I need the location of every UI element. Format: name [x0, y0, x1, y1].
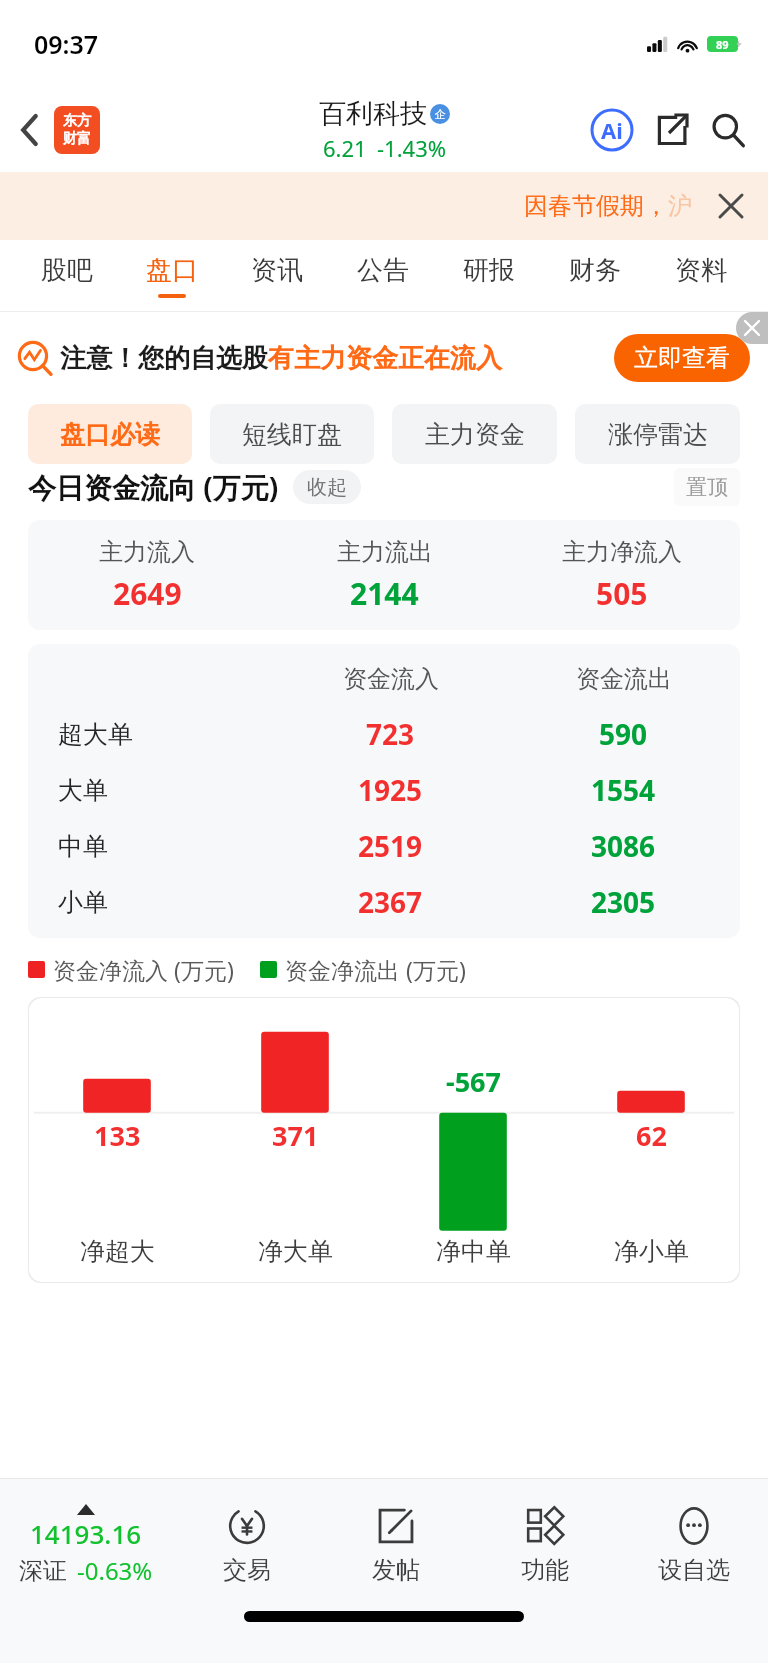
staticText: 资讯	[251, 254, 303, 287]
staticText: 置顶	[686, 474, 728, 500]
button[interactable]: Back	[8, 108, 52, 152]
button[interactable]: 主力资金	[392, 404, 557, 464]
button[interactable]: 短线盯盘	[210, 404, 374, 464]
staticText: 有主力资金正在流入	[268, 342, 502, 375]
button[interactable]: Close notice	[714, 189, 748, 223]
staticText: 主力流入	[99, 537, 195, 567]
button[interactable]: 盘口	[119, 240, 224, 312]
staticText: -1.43%	[377, 133, 447, 163]
staticText: 涨停雷达	[608, 419, 708, 450]
staticText: 功能	[521, 1555, 569, 1585]
staticText: 资金净流出 (万元)	[285, 954, 466, 985]
staticText: 净大单	[258, 1236, 333, 1267]
button[interactable]: 公告	[330, 240, 436, 312]
staticText: 1554	[591, 771, 656, 809]
staticText: 资金流入	[343, 664, 439, 694]
button[interactable]: 盘口必读	[28, 404, 192, 464]
button[interactable]: 主力流入	[28, 520, 740, 630]
button[interactable]: Close ad	[736, 312, 768, 344]
staticText: 62	[636, 1117, 667, 1154]
button[interactable]: 因春节假期，	[0, 172, 768, 240]
button[interactable]: 功能	[470, 1479, 619, 1611]
staticText: 505	[596, 573, 648, 614]
staticText: 设自选	[658, 1555, 730, 1585]
staticText: 百利科技	[319, 97, 427, 131]
staticText: 723	[366, 715, 415, 753]
staticText: 净中单	[436, 1236, 511, 1267]
button[interactable]: 资料	[648, 240, 754, 312]
staticText: 超大单	[58, 719, 133, 750]
staticText: 盘口必读	[60, 419, 160, 450]
staticText: 2305	[591, 883, 656, 921]
staticText: 盘口	[146, 254, 198, 287]
button[interactable]: AI assistant	[586, 104, 638, 156]
staticText: 企	[435, 107, 446, 121]
staticText: 因春节假期，	[524, 191, 668, 221]
staticText: 6.21	[323, 133, 367, 163]
button[interactable]: 资金流入	[28, 644, 740, 938]
staticText: 财富	[63, 130, 91, 148]
button[interactable]: East Money	[54, 106, 100, 154]
staticText: 沪	[668, 191, 692, 221]
staticText: 09:37	[34, 27, 99, 61]
staticText: 中单	[58, 831, 108, 862]
staticText: 590	[599, 715, 648, 753]
staticText: 1925	[358, 771, 423, 809]
staticText: 2519	[358, 827, 423, 865]
staticText: 今日资金流向 (万元)	[28, 468, 279, 506]
staticText: 深证	[19, 1556, 67, 1586]
staticText: 资金净流入 (万元)	[53, 954, 234, 985]
staticText: 89	[716, 37, 729, 52]
staticText: 主力流出	[337, 537, 433, 567]
staticText: 交易	[223, 1555, 271, 1585]
staticText: -0.63%	[77, 1554, 153, 1587]
button[interactable]: 立即查看	[614, 334, 750, 382]
button[interactable]: Search	[702, 104, 754, 156]
button[interactable]: 14193.16	[0, 1479, 172, 1611]
staticText: Ai	[601, 115, 623, 145]
button[interactable]: 财务	[542, 240, 648, 312]
button[interactable]: 研报	[436, 240, 542, 312]
staticText: 股吧	[41, 254, 93, 287]
staticText: 东方	[63, 112, 91, 130]
button[interactable]: 涨停雷达	[575, 404, 740, 464]
staticText: 资金流出	[576, 664, 672, 694]
staticText: 净超大	[80, 1236, 155, 1267]
staticText: 资料	[675, 254, 727, 287]
staticText: 发帖	[372, 1555, 420, 1585]
staticText: 14193.16	[30, 1516, 142, 1551]
staticText: 立即查看	[634, 343, 730, 373]
staticText: 小单	[58, 887, 108, 918]
button[interactable]: 收起	[293, 470, 361, 504]
button[interactable]: 交易	[172, 1479, 321, 1611]
button[interactable]: 设自选	[619, 1479, 768, 1611]
staticText: 公告	[357, 254, 409, 287]
staticText: 133	[94, 1117, 141, 1154]
staticText: 2367	[358, 883, 423, 921]
staticText: 收起	[307, 475, 347, 500]
staticText: 2144	[350, 573, 419, 614]
staticText: 371	[272, 1117, 319, 1154]
staticText: 主力净流入	[562, 537, 682, 567]
staticText: 2649	[113, 573, 182, 614]
button[interactable]: 股吧	[14, 240, 119, 312]
button[interactable]: 发帖	[321, 1479, 470, 1611]
staticText: 大单	[58, 775, 108, 806]
button[interactable]: 133	[28, 997, 740, 1283]
button[interactable]: 资讯	[224, 240, 330, 312]
staticText: 3086	[591, 827, 656, 865]
staticText: 净小单	[614, 1236, 689, 1267]
button[interactable]: 注意！您的自选股	[18, 334, 750, 382]
staticText: 研报	[463, 254, 515, 287]
button[interactable]: 置顶	[674, 468, 740, 506]
staticText: 财务	[569, 254, 621, 287]
button[interactable]: Share	[648, 106, 696, 154]
staticText: -567	[446, 1063, 501, 1100]
staticText: 注意！您的自选股	[60, 342, 268, 375]
staticText: 短线盯盘	[242, 419, 342, 450]
staticText: 主力资金	[425, 419, 525, 450]
